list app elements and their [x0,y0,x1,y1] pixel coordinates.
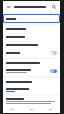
button[interactable] [3,14,60,23]
button[interactable]: Toggle on [3,66,60,76]
button[interactable]: Toggle off [3,49,60,57]
button[interactable] [3,41,60,49]
button[interactable]: Search [50,3,58,11]
button[interactable]: Nav item 1 [3,106,22,113]
button[interactable] [3,85,60,94]
button[interactable] [3,96,60,106]
button[interactable] [3,25,60,33]
button[interactable] [3,33,60,41]
button[interactable]: Toggle on [50,69,57,73]
button[interactable]: Toggle off [50,51,57,55]
button[interactable]: Back [5,3,13,11]
button[interactable]: Nav item 2 [22,106,41,113]
button[interactable]: Nav item 3 [41,106,60,113]
